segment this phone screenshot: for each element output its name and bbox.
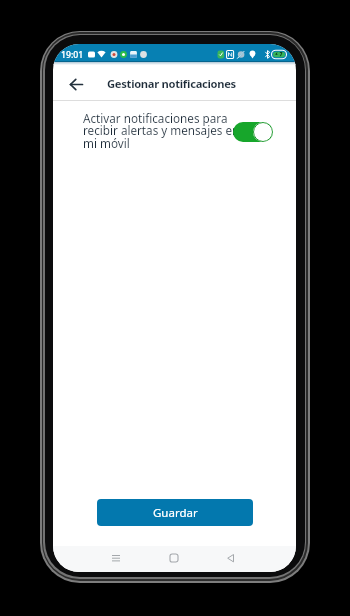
staticText: 19:01 xyxy=(61,49,84,61)
button[interactable] xyxy=(233,122,273,142)
button[interactable] xyxy=(101,543,130,572)
staticText: Guardar xyxy=(153,505,198,521)
button[interactable] xyxy=(63,71,89,97)
button[interactable] xyxy=(216,543,245,572)
button[interactable] xyxy=(159,543,188,572)
staticText: Gestionar notificaciones xyxy=(53,76,290,91)
button[interactable]: Guardar xyxy=(97,499,253,526)
staticText: Activar notificaciones para recibir aler… xyxy=(83,110,240,152)
